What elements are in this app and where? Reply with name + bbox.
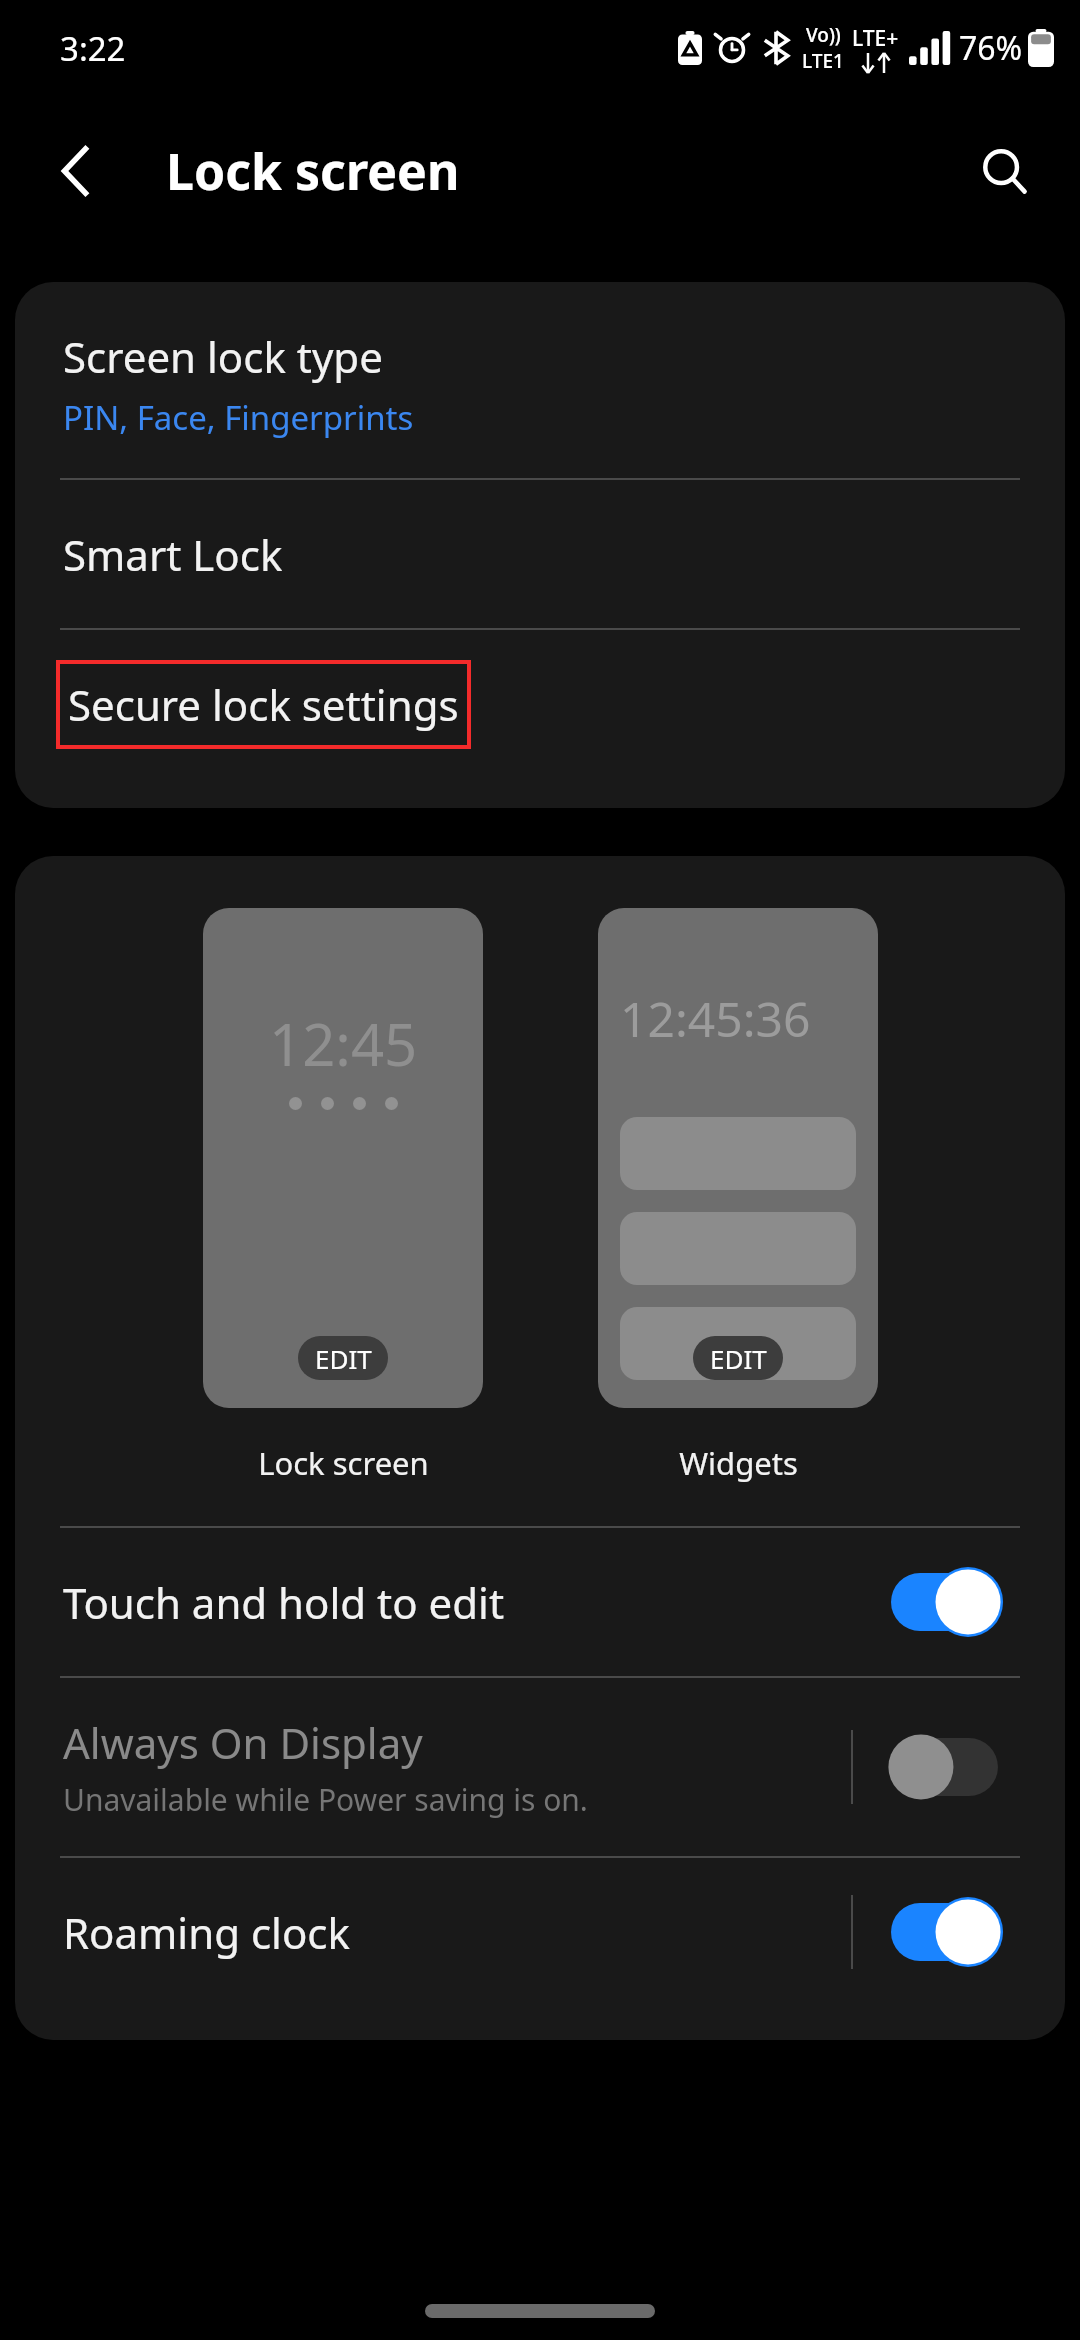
- button[interactable]: 12:45:36: [598, 908, 878, 1408]
- staticText: 12:45: [269, 1004, 418, 1083]
- button[interactable]: Off: [891, 1734, 1003, 1800]
- staticText: Screen lock type: [63, 328, 383, 385]
- button[interactable]: Secure lock settings: [15, 630, 1065, 778]
- staticText: Secure lock settings: [68, 676, 459, 733]
- staticText: 12:45:36: [620, 986, 811, 1051]
- button[interactable]: 12:45: [203, 908, 483, 1408]
- staticText: Lock screen: [258, 1442, 429, 1484]
- staticText: 3:22: [60, 26, 126, 71]
- button[interactable]: Search: [964, 131, 1044, 211]
- staticText: Unavailable while Power saving is on.: [63, 1779, 588, 1820]
- button[interactable]: Back: [38, 133, 114, 209]
- staticText: Always On Display: [63, 1714, 423, 1771]
- button[interactable]: On: [891, 1569, 1003, 1635]
- button[interactable]: EDIT: [298, 1336, 388, 1380]
- staticText: LTE1: [802, 48, 844, 74]
- button[interactable]: Roaming clock: [15, 1858, 1065, 2006]
- button[interactable]: Smart Lock: [15, 480, 1065, 628]
- staticText: Touch and hold to edit: [63, 1574, 505, 1631]
- staticText: Lock screen: [166, 137, 460, 205]
- button[interactable]: On: [891, 1899, 1003, 1965]
- button[interactable]: EDIT: [693, 1336, 783, 1380]
- staticText: Smart Lock: [63, 526, 283, 583]
- staticText: Widgets: [679, 1442, 798, 1484]
- staticText: PIN, Face, Fingerprints: [63, 395, 414, 440]
- staticText: 76%: [959, 26, 1023, 70]
- button[interactable]: Screen lock type: [15, 282, 1065, 478]
- staticText: EDIT: [315, 1341, 372, 1376]
- staticText: Vo)): [806, 22, 841, 48]
- staticText: LTE+: [852, 24, 899, 53]
- staticText: Roaming clock: [63, 1904, 350, 1961]
- button[interactable]: Touch and hold to edit: [15, 1528, 1065, 1676]
- button[interactable]: Always On Display: [15, 1678, 1065, 1856]
- staticText: EDIT: [710, 1341, 767, 1376]
